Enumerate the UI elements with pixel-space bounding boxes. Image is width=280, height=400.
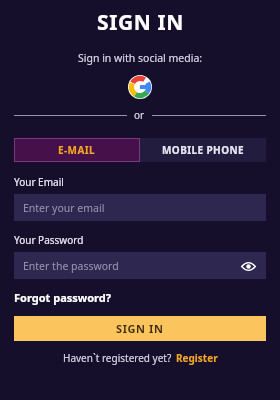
button[interactable]: E-MAIL [14,138,140,162]
button[interactable]: Enter your email [14,194,266,221]
staticText: Enter the password [23,259,239,273]
staticText: Haven`t registered yet? [63,351,172,365]
staticText: Register [176,351,218,365]
staticText: or [134,108,145,122]
staticText: Forgot password? [14,290,111,305]
staticText: SIGN IN [116,321,164,336]
staticText: Your Password [14,233,84,247]
button[interactable]: Forgot password? [14,290,266,305]
button[interactable]: Sign in with Google [127,74,153,100]
staticText: MOBILE PHONE [162,143,244,157]
button[interactable]: SIGN IN [14,316,266,341]
staticText: SIGN IN [97,8,184,37]
button[interactable]: Enter the password [14,252,266,279]
staticText: E-MAIL [58,143,96,157]
staticText: Your Email [14,175,64,189]
staticText: Enter your email [23,201,257,215]
button[interactable]: MOBILE PHONE [140,138,266,162]
staticText: Sign in with social media: [78,51,203,65]
button[interactable]: Show password [239,257,257,275]
button[interactable]: Register [176,351,218,365]
